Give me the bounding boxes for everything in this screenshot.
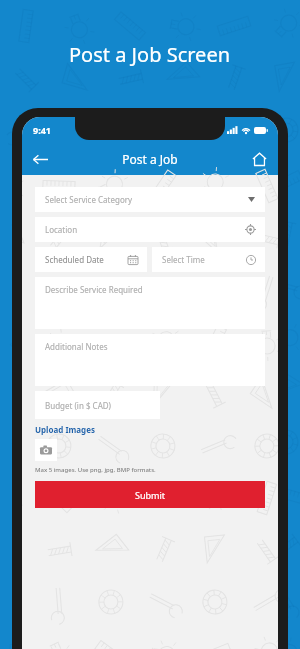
button[interactable]: Describe Service Required — [35, 277, 265, 329]
button[interactable]: Submit — [35, 481, 265, 508]
button[interactable]: Scheduled Date — [35, 247, 147, 272]
button[interactable]: Budget (in $ CAD) — [35, 391, 160, 419]
button[interactable]: Location — [35, 217, 265, 242]
staticText: Submit — [135, 489, 166, 501]
staticText: Select Time — [162, 254, 205, 265]
staticText: Max 5 images. Use png, jpg, BMP formats. — [35, 466, 156, 474]
button[interactable]: Additional Notes — [35, 334, 265, 386]
staticText: Post a Job Screen — [69, 41, 231, 68]
staticText: Budget (in $ CAD) — [45, 400, 112, 411]
button[interactable]: Select Service Category — [35, 187, 265, 212]
staticText: Scheduled Date — [45, 254, 104, 265]
button[interactable]: Add photo — [35, 439, 57, 461]
staticText: Describe Service Required — [45, 284, 143, 295]
button[interactable]: Home — [248, 148, 270, 170]
staticText: Select Service Category — [45, 194, 133, 205]
staticText: Post a Job — [122, 151, 178, 167]
staticText: Additional Notes — [45, 341, 108, 352]
button[interactable]: Upload Images — [35, 424, 95, 435]
button[interactable]: Back — [29, 148, 51, 170]
staticText: 9:41 — [33, 124, 51, 136]
button[interactable]: Select Time — [152, 247, 265, 272]
staticText: Location — [45, 224, 78, 235]
